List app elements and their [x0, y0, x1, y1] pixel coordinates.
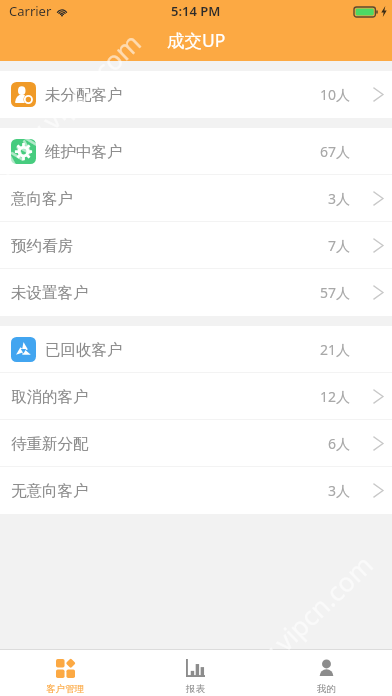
staticText: 未分配客户: [45, 85, 123, 105]
staticText: 成交UP: [167, 28, 226, 52]
button[interactable]: 预约看房: [0, 222, 392, 269]
staticText: 无意向客户: [11, 481, 89, 501]
staticText: 3人: [328, 189, 351, 208]
staticText: 12人: [320, 387, 351, 406]
button[interactable]: 报表: [130, 650, 261, 696]
staticText: 57人: [320, 283, 351, 302]
button[interactable]: 已回收客户: [0, 326, 392, 373]
staticText: 67人: [320, 142, 351, 161]
staticText: Carrier: [9, 2, 52, 20]
button[interactable]: 取消的客户: [0, 373, 392, 420]
staticText: 客户管理: [46, 683, 84, 695]
button[interactable]: 待重新分配: [0, 420, 392, 467]
staticText: 待重新分配: [11, 434, 89, 454]
staticText: 未设置客户: [11, 283, 89, 303]
staticText: 预约看房: [11, 236, 73, 256]
button[interactable]: 客户管理: [0, 650, 130, 696]
button[interactable]: 未分配客户: [0, 71, 392, 118]
button[interactable]: 无意向客户: [0, 467, 392, 514]
staticText: 维护中客户: [45, 142, 123, 162]
staticText: 取消的客户: [11, 387, 89, 407]
staticText: 5:14 PM: [171, 2, 221, 20]
staticText: 已回收客户: [45, 340, 123, 360]
staticText: 6人: [328, 434, 351, 453]
staticText: 21人: [320, 340, 351, 359]
staticText: 我的: [317, 683, 336, 695]
staticText: 10人: [320, 85, 351, 104]
button[interactable]: 维护中客户: [0, 128, 392, 175]
staticText: www.vipcn.com: [0, 24, 148, 183]
staticText: 意向客户: [11, 189, 73, 209]
button[interactable]: 我的: [261, 650, 392, 696]
staticText: 7人: [328, 236, 351, 255]
button[interactable]: 未设置客户: [0, 269, 392, 316]
staticText: 3人: [328, 481, 351, 500]
staticText: 报表: [186, 683, 205, 695]
button[interactable]: 意向客户: [0, 175, 392, 222]
staticText: www.vipcn.com: [218, 546, 380, 696]
